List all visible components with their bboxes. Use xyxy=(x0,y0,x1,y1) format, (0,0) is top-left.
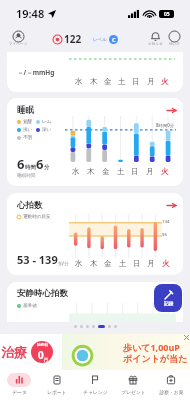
staticText: 土 xyxy=(117,167,125,176)
staticText: 6 xyxy=(17,155,25,173)
button[interactable]: 安静時心拍数 xyxy=(7,282,183,322)
staticText: 覚醒 xyxy=(23,119,33,125)
button[interactable]: チャレンジ xyxy=(76,370,114,413)
button[interactable]: 閉じる xyxy=(184,335,189,340)
staticText: 日 xyxy=(131,167,139,176)
staticText: 火 xyxy=(161,77,169,86)
staticText: 運動時の目安 xyxy=(23,214,51,220)
staticText: 歩いて1,00uP xyxy=(123,341,180,353)
staticText: お知らせ xyxy=(148,42,163,47)
staticText: 睡眠時間 xyxy=(17,173,36,179)
staticText: 安静時心拍数 xyxy=(17,288,68,299)
button[interactable]: 使い方 xyxy=(166,31,183,47)
button[interactable]: 詳細 xyxy=(167,106,176,115)
staticText: 月 xyxy=(147,77,155,86)
staticText: 05 xyxy=(164,11,170,18)
button[interactable]: 睡眠 xyxy=(7,98,183,186)
staticText: 火 xyxy=(161,167,169,176)
staticText: 金 xyxy=(104,77,112,86)
staticText: 月 xyxy=(146,167,154,176)
staticText: 木 xyxy=(87,167,95,176)
staticText: 水 xyxy=(75,259,83,268)
button[interactable]: 広告 xyxy=(0,334,190,370)
staticText: 19:48 xyxy=(16,6,45,21)
staticText: 96 xyxy=(162,232,167,238)
button[interactable]: 122 xyxy=(53,32,82,46)
button[interactable]: 記録 xyxy=(154,284,182,312)
staticText: 土 xyxy=(118,77,126,86)
button[interactable]: マイページ xyxy=(7,31,30,47)
staticText: 日 xyxy=(132,77,140,86)
staticText: レポート xyxy=(47,389,67,395)
staticText: 分 xyxy=(44,164,50,171)
staticText: データ xyxy=(12,389,27,395)
staticText: 木 xyxy=(90,77,98,86)
button[interactable]: プレゼント xyxy=(114,370,152,413)
staticText: －/－mmHg xyxy=(17,68,55,77)
staticText: 診察料 xyxy=(37,343,48,348)
button[interactable]: －/－mmHg xyxy=(7,52,183,92)
staticText: 使い方 xyxy=(169,42,180,47)
staticText: 6 xyxy=(36,155,44,173)
staticText: 拍/分 xyxy=(58,260,69,266)
button[interactable]: 心拍数 xyxy=(7,193,183,275)
staticText: 122 xyxy=(64,32,82,46)
staticText: 日 xyxy=(133,259,141,268)
staticText: 水 xyxy=(75,77,83,86)
staticText: レム xyxy=(42,119,52,125)
staticText: 時間 xyxy=(25,164,36,171)
staticText: 心拍数 xyxy=(17,200,43,211)
staticText: 記録 xyxy=(164,301,174,307)
button[interactable]: 詳細 xyxy=(167,201,176,210)
staticText: 円 xyxy=(44,357,48,362)
staticText: 金 xyxy=(102,167,110,176)
staticText: 土 xyxy=(119,259,127,268)
button[interactable]: レポート xyxy=(38,370,76,413)
staticText: 8時間0分 xyxy=(156,122,175,128)
staticText: 基準値 xyxy=(23,303,37,309)
button[interactable]: データ xyxy=(0,370,38,413)
staticText: 木 xyxy=(90,259,98,268)
staticText: 0 xyxy=(38,348,44,362)
staticText: C xyxy=(112,36,116,43)
staticText: 134 xyxy=(162,219,170,225)
staticText: チャレンジ xyxy=(83,389,108,395)
staticText: 53 - 139 xyxy=(17,252,58,267)
staticText: 不明 xyxy=(23,135,33,141)
staticText: 診察・お薬 xyxy=(159,389,184,395)
staticText: レベル xyxy=(93,37,107,43)
staticText: 火 xyxy=(162,259,170,268)
button[interactable]: レベル xyxy=(89,33,122,46)
button[interactable]: 診察・お薬 xyxy=(152,370,190,413)
staticText: 水 xyxy=(72,167,80,176)
staticText: 浅い xyxy=(23,127,33,133)
staticText: ポイントが当た xyxy=(123,353,188,364)
staticText: 深い xyxy=(42,127,52,133)
staticText: 治療 xyxy=(1,344,27,360)
staticText: 月 xyxy=(147,259,155,268)
staticText: プレゼント xyxy=(121,389,146,395)
button[interactable]: お知らせ xyxy=(145,31,166,47)
staticText: マイページ xyxy=(9,42,28,47)
staticText: 金 xyxy=(104,259,112,268)
staticText: 睡眠 xyxy=(17,105,34,116)
